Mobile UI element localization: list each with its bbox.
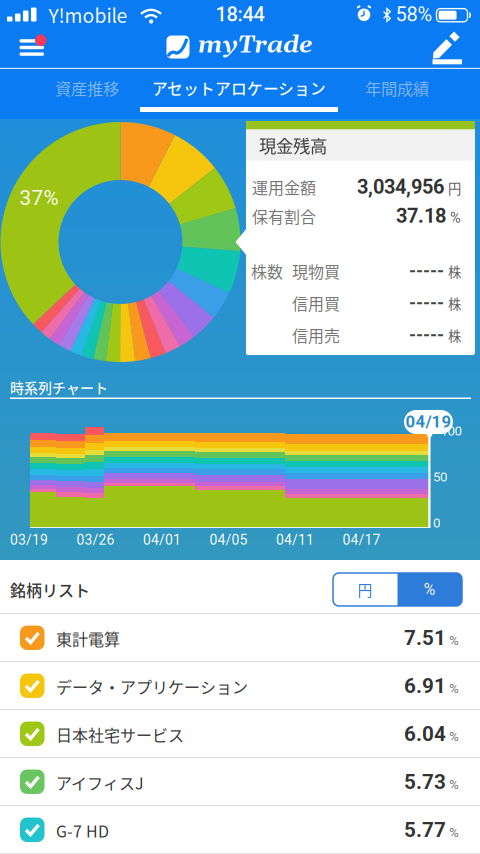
staticText: 03/19 bbox=[10, 532, 48, 548]
button[interactable]: 資産推移 bbox=[22, 67, 152, 109]
button[interactable]: Menu bbox=[10, 30, 54, 58]
staticText: myTrade bbox=[198, 30, 312, 61]
button[interactable]: アセットアロケーション bbox=[134, 67, 344, 109]
staticText: 58% bbox=[395, 3, 432, 26]
button[interactable]: 円 bbox=[333, 573, 397, 606]
staticText: 日本社宅サービス bbox=[56, 723, 184, 746]
staticText: % bbox=[449, 729, 459, 744]
staticText: 株 bbox=[448, 262, 461, 281]
staticText: 100 bbox=[440, 423, 461, 439]
staticText: % bbox=[449, 777, 459, 792]
button[interactable]: 日本社宅サービス bbox=[0, 710, 480, 758]
staticText: 3,034,956 bbox=[357, 175, 444, 199]
button[interactable]: Edit bbox=[418, 26, 470, 68]
button[interactable]: 年間成績 bbox=[332, 67, 462, 109]
button[interactable]: アイフィスJ bbox=[0, 758, 480, 806]
staticText: 資産推移 bbox=[55, 76, 119, 100]
staticText: 信用売 bbox=[292, 323, 340, 347]
staticText: 5.77 bbox=[404, 818, 446, 842]
staticText: 37.18 bbox=[396, 204, 446, 228]
staticText: アセットアロケーション bbox=[152, 77, 326, 99]
staticText: 株 bbox=[448, 326, 461, 345]
staticText: 銘柄リスト bbox=[10, 578, 90, 601]
staticText: ----- bbox=[409, 324, 444, 346]
staticText: 7.51 bbox=[404, 626, 446, 650]
staticText: アイフィスJ bbox=[56, 771, 144, 794]
button[interactable]: データ・アプリケーション bbox=[0, 662, 480, 710]
staticText: 6.04 bbox=[404, 722, 446, 746]
staticText: データ・アプリケーション bbox=[56, 675, 248, 698]
button[interactable]: 東計電算 bbox=[0, 614, 480, 662]
staticText: G-7 HD bbox=[56, 819, 109, 842]
staticText: % bbox=[424, 580, 436, 599]
staticText: 現物買 bbox=[292, 259, 340, 283]
staticText: 東計電算 bbox=[56, 627, 120, 650]
staticText: 50 bbox=[433, 469, 447, 485]
staticText: 04/05 bbox=[209, 532, 247, 548]
staticText: 6.91 bbox=[404, 674, 446, 698]
staticText: 株数 bbox=[251, 259, 283, 283]
staticText: 時系列チャート bbox=[10, 377, 108, 397]
staticText: Y!mobile bbox=[48, 0, 127, 28]
staticText: 5.73 bbox=[404, 770, 446, 794]
button[interactable]: G-7 HD bbox=[0, 806, 480, 854]
staticText: 運用金額 bbox=[252, 175, 316, 199]
staticText: ----- bbox=[409, 260, 444, 282]
button[interactable]: % bbox=[397, 573, 462, 606]
staticText: % bbox=[449, 825, 459, 840]
staticText: 04/11 bbox=[276, 532, 314, 548]
staticText: 04/01 bbox=[143, 532, 181, 548]
staticText: 18:44 bbox=[215, 3, 264, 26]
staticText: % bbox=[449, 681, 459, 696]
staticText: 37% bbox=[19, 186, 58, 210]
staticText: 年間成績 bbox=[365, 76, 429, 100]
staticText: 現金残高 bbox=[259, 132, 327, 158]
staticText: 04/19 bbox=[405, 412, 451, 431]
staticText: % bbox=[449, 633, 459, 648]
staticText: 04/17 bbox=[342, 532, 380, 548]
staticText: 円 bbox=[358, 579, 373, 600]
staticText: 信用買 bbox=[292, 291, 340, 315]
staticText: 03/26 bbox=[76, 532, 114, 548]
staticText: 株 bbox=[448, 294, 461, 313]
staticText: 円 bbox=[448, 178, 461, 198]
staticText: % bbox=[450, 209, 461, 226]
staticText: 保有割合 bbox=[252, 204, 316, 228]
staticText: ----- bbox=[409, 292, 444, 314]
staticText: 0 bbox=[433, 515, 440, 531]
